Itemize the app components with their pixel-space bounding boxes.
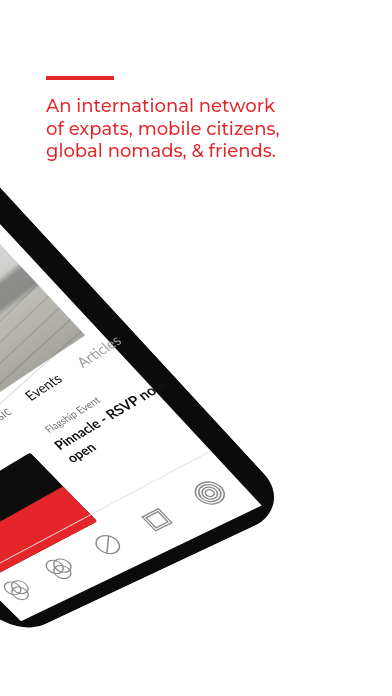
staticText: Flagship Event — [42, 393, 103, 435]
staticText: Pinnacle - RSVP now open — [50, 375, 183, 465]
staticText: An international network of expats, mobi… — [46, 95, 280, 161]
staticText: Articles — [72, 331, 125, 370]
staticText: Music — [0, 402, 15, 432]
staticText: Events — [21, 369, 66, 403]
button[interactable]: Music — [0, 331, 125, 432]
